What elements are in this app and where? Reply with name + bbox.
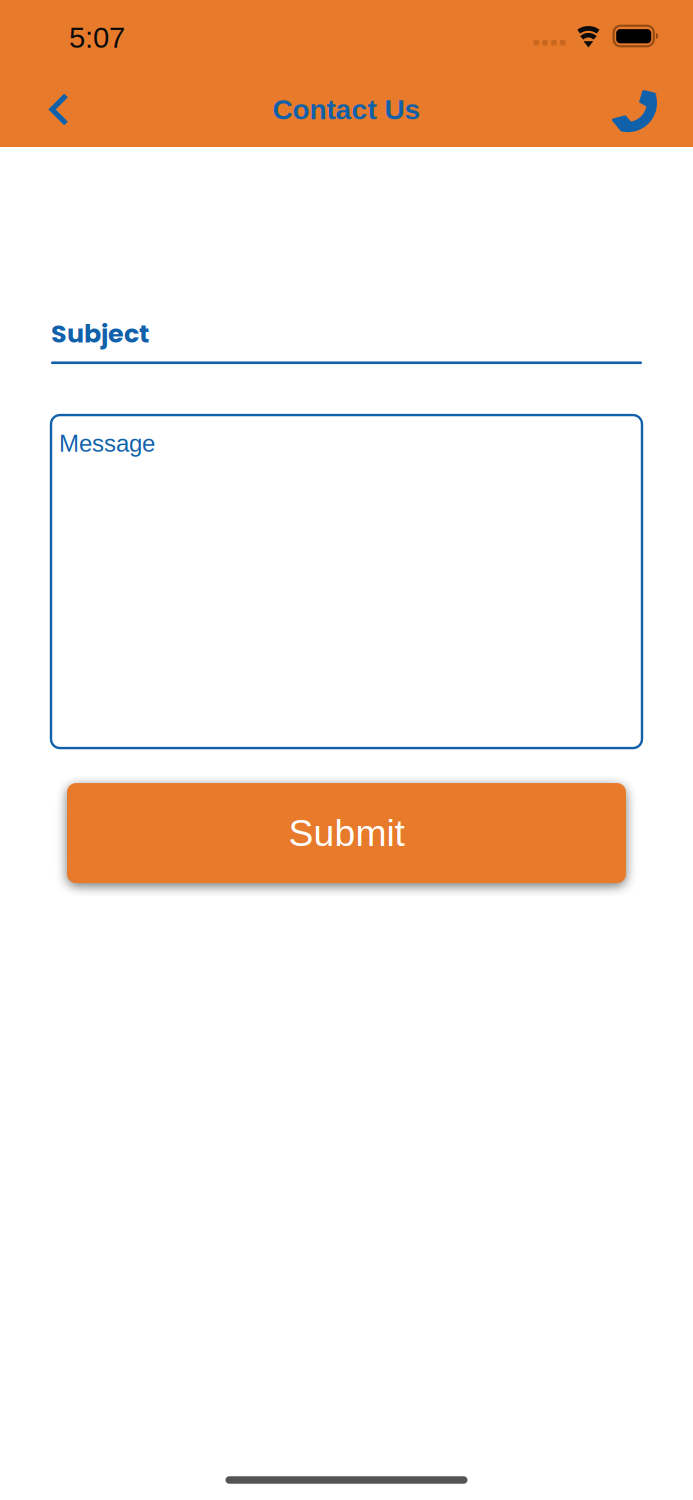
staticText: Contact Us — [272, 94, 420, 125]
button[interactable]: Call — [602, 77, 664, 141]
button[interactable]: Message — [51, 415, 642, 748]
staticText: Subject — [51, 316, 149, 351]
button[interactable]: Submit — [67, 783, 626, 883]
staticText: 5:07 — [69, 21, 125, 54]
staticText: Submit — [288, 812, 404, 854]
button[interactable]: Subject — [51, 316, 642, 364]
button[interactable]: Back — [28, 77, 90, 141]
staticText: Message — [59, 430, 155, 457]
